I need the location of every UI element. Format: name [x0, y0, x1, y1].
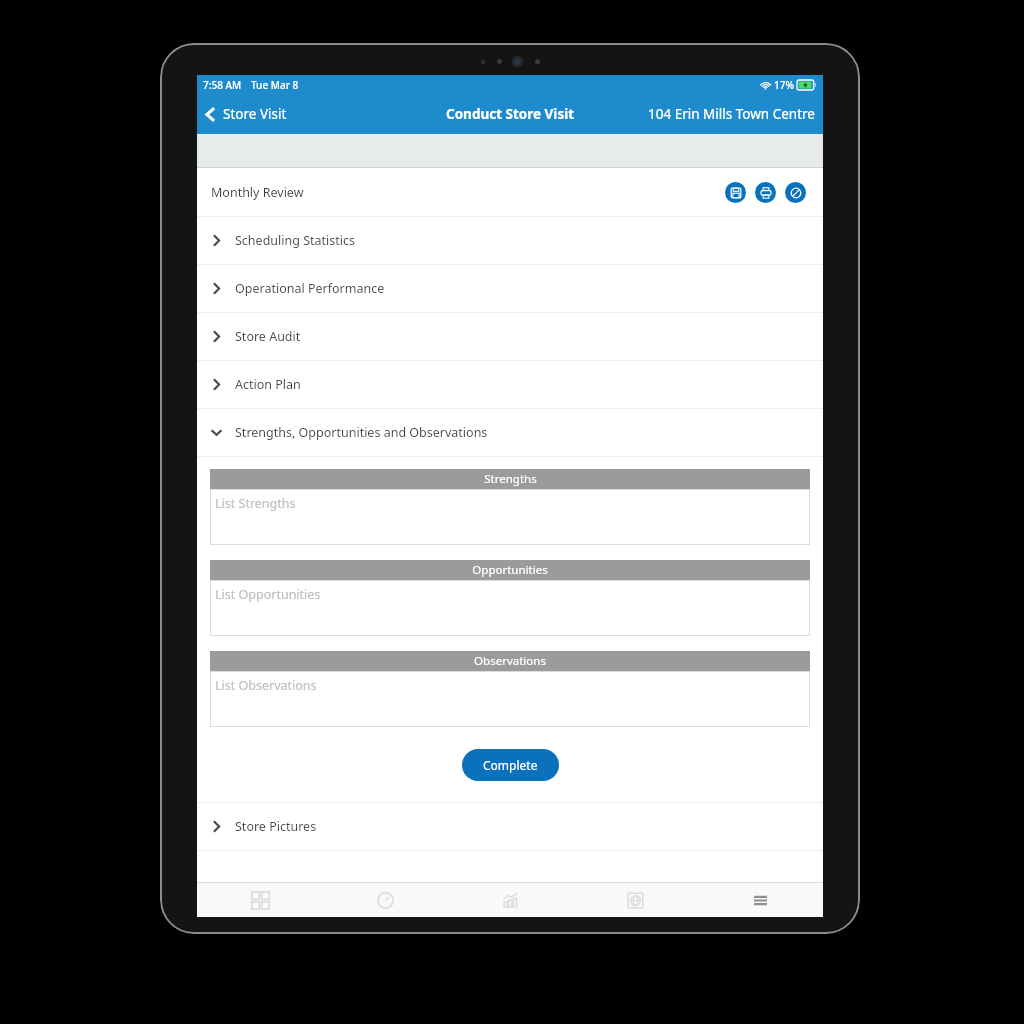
staticText: Store Audit [235, 328, 301, 345]
staticText: 7:58 AM [203, 78, 242, 92]
button[interactable]: List Observations [210, 671, 810, 727]
staticText: List Observations [215, 677, 317, 694]
button[interactable]: Web [573, 883, 698, 917]
staticText: Action Plan [235, 376, 301, 393]
staticText: 17% [774, 78, 794, 92]
button[interactable]: Action Plan [197, 361, 823, 408]
button[interactable]: Store Pictures [197, 803, 823, 850]
staticText: Strengths, Opportunities and Observation… [235, 424, 488, 441]
staticText: Store Pictures [235, 818, 317, 835]
staticText: List Strengths [215, 495, 296, 512]
button[interactable]: Strengths, Opportunities and Observation… [197, 409, 823, 456]
staticText: Operational Performance [235, 280, 385, 297]
button[interactable]: Store Audit [197, 313, 823, 360]
button[interactable]: Dashboard [197, 883, 323, 917]
button[interactable]: List Strengths [210, 489, 810, 545]
staticText: Opportunities [472, 562, 548, 578]
staticText: Complete [483, 757, 538, 773]
staticText: Conduct Store Visit [446, 105, 575, 123]
button[interactable]: Complete [462, 749, 559, 781]
button[interactable]: Print [755, 182, 776, 203]
staticText: Monthly Review [211, 184, 304, 201]
button[interactable]: Store Visit [204, 105, 287, 123]
staticText: Store Visit [223, 105, 287, 123]
staticText: Observations [474, 653, 546, 669]
button[interactable]: List Opportunities [210, 580, 810, 636]
button[interactable]: Scheduling Statistics [197, 217, 823, 264]
staticText: List Opportunities [215, 586, 321, 603]
staticText: Tue Mar 8 [251, 78, 299, 92]
button[interactable]: Performance [323, 883, 448, 917]
staticText: Scheduling Statistics [235, 232, 356, 249]
button[interactable]: Operational Performance [197, 265, 823, 312]
button[interactable]: 104 Erin Mills Town Centre [648, 105, 815, 123]
button[interactable]: Cancel [785, 182, 806, 203]
button[interactable]: Menu [698, 883, 823, 917]
button[interactable]: Reports [448, 883, 573, 917]
button[interactable]: Save [725, 182, 746, 203]
staticText: Strengths [484, 471, 537, 487]
